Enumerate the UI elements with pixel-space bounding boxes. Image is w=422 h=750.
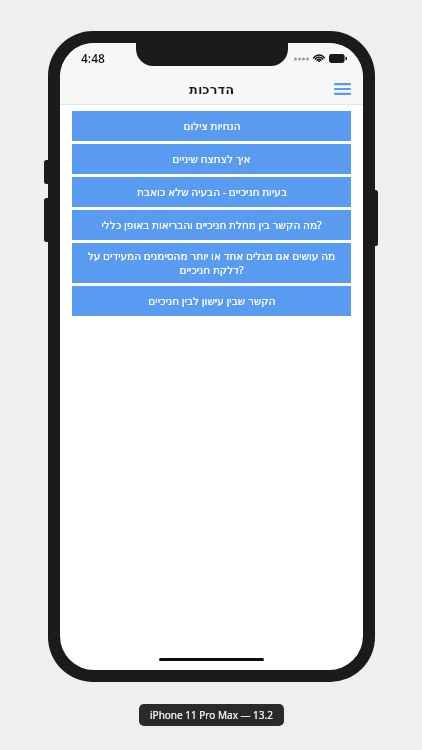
- staticText: iPhone 11 Pro Max — 13.2: [150, 708, 273, 722]
- button[interactable]: הנחיות צילום: [72, 111, 351, 141]
- button[interactable]: בעיות חניכיים - הבעיה שלא כואבת: [72, 177, 351, 207]
- button[interactable]: מה עושים אם מגלים אחד או יותר מהסימנים ה…: [72, 243, 351, 283]
- staticText: הנחיות צילום: [183, 119, 241, 133]
- staticText: הדרכות: [189, 82, 235, 97]
- button[interactable]: הקשר שבין עישון לבין חניכיים: [72, 286, 351, 316]
- staticText: מה הקשר בין מחלת חניכיים והבריאות באופן …: [101, 218, 322, 232]
- staticText: איך לצחצח שיניים: [172, 152, 251, 166]
- staticText: בעיות חניכיים - הבעיה שלא כואבת: [137, 185, 287, 199]
- staticText: מה עושים אם מגלים אחד או יותר מהסימנים ה…: [81, 249, 342, 277]
- staticText: הקשר שבין עישון לבין חניכיים: [148, 294, 276, 308]
- button[interactable]: Menu: [328, 75, 356, 103]
- button[interactable]: איך לצחצח שיניים: [72, 144, 351, 174]
- staticText: 4:48: [81, 50, 105, 66]
- button[interactable]: מה הקשר בין מחלת חניכיים והבריאות באופן …: [72, 210, 351, 240]
